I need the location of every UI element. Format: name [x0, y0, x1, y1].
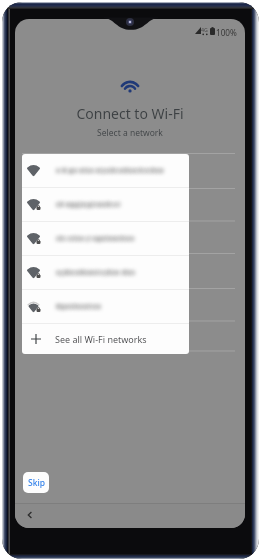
button[interactable] [22, 188, 189, 221]
button[interactable]: See all Wi-Fi networks [22, 324, 189, 354]
button[interactable] [22, 154, 189, 187]
staticText: See all Wi-Fi networks [55, 333, 147, 345]
staticText: Skip [28, 477, 45, 489]
button[interactable] [22, 222, 189, 255]
button[interactable] [22, 256, 189, 289]
button[interactable]: Skip [23, 472, 49, 493]
button[interactable] [22, 290, 189, 323]
staticText: Connect to Wi-Fi [15, 104, 245, 123]
button[interactable]: Back [24, 509, 36, 521]
staticText: 100% [216, 27, 237, 38]
staticText: 4G [201, 26, 208, 33]
staticText: Select a network [15, 127, 245, 139]
